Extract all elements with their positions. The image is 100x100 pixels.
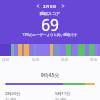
button[interactable]: Next day bbox=[59, 3, 66, 9]
staticText: 2月5日 bbox=[43, 3, 57, 9]
staticText: 睡眠スコア bbox=[0, 11, 100, 16]
staticText: 69 bbox=[0, 14, 100, 35]
staticText: 5時17分 bbox=[55, 91, 71, 97]
staticText: 浅い睡眠 bbox=[55, 97, 67, 100]
staticText: 深い睡眠 bbox=[5, 97, 17, 100]
button[interactable]: 5時17分 bbox=[50, 91, 100, 100]
staticText: 05:40 bbox=[61, 58, 69, 62]
staticText: 9時45分 bbox=[0, 72, 100, 79]
staticText: 23:50 bbox=[2, 58, 10, 62]
staticText: 09:35 bbox=[90, 58, 98, 62]
staticText: 02:30 bbox=[32, 58, 40, 62]
staticText: 2時20分 bbox=[5, 91, 21, 97]
staticText: 73%のユーザーよりも良い睡眠です bbox=[0, 32, 100, 37]
button[interactable]: 2時20分 bbox=[0, 91, 50, 100]
button[interactable]: Previous day bbox=[34, 3, 41, 9]
